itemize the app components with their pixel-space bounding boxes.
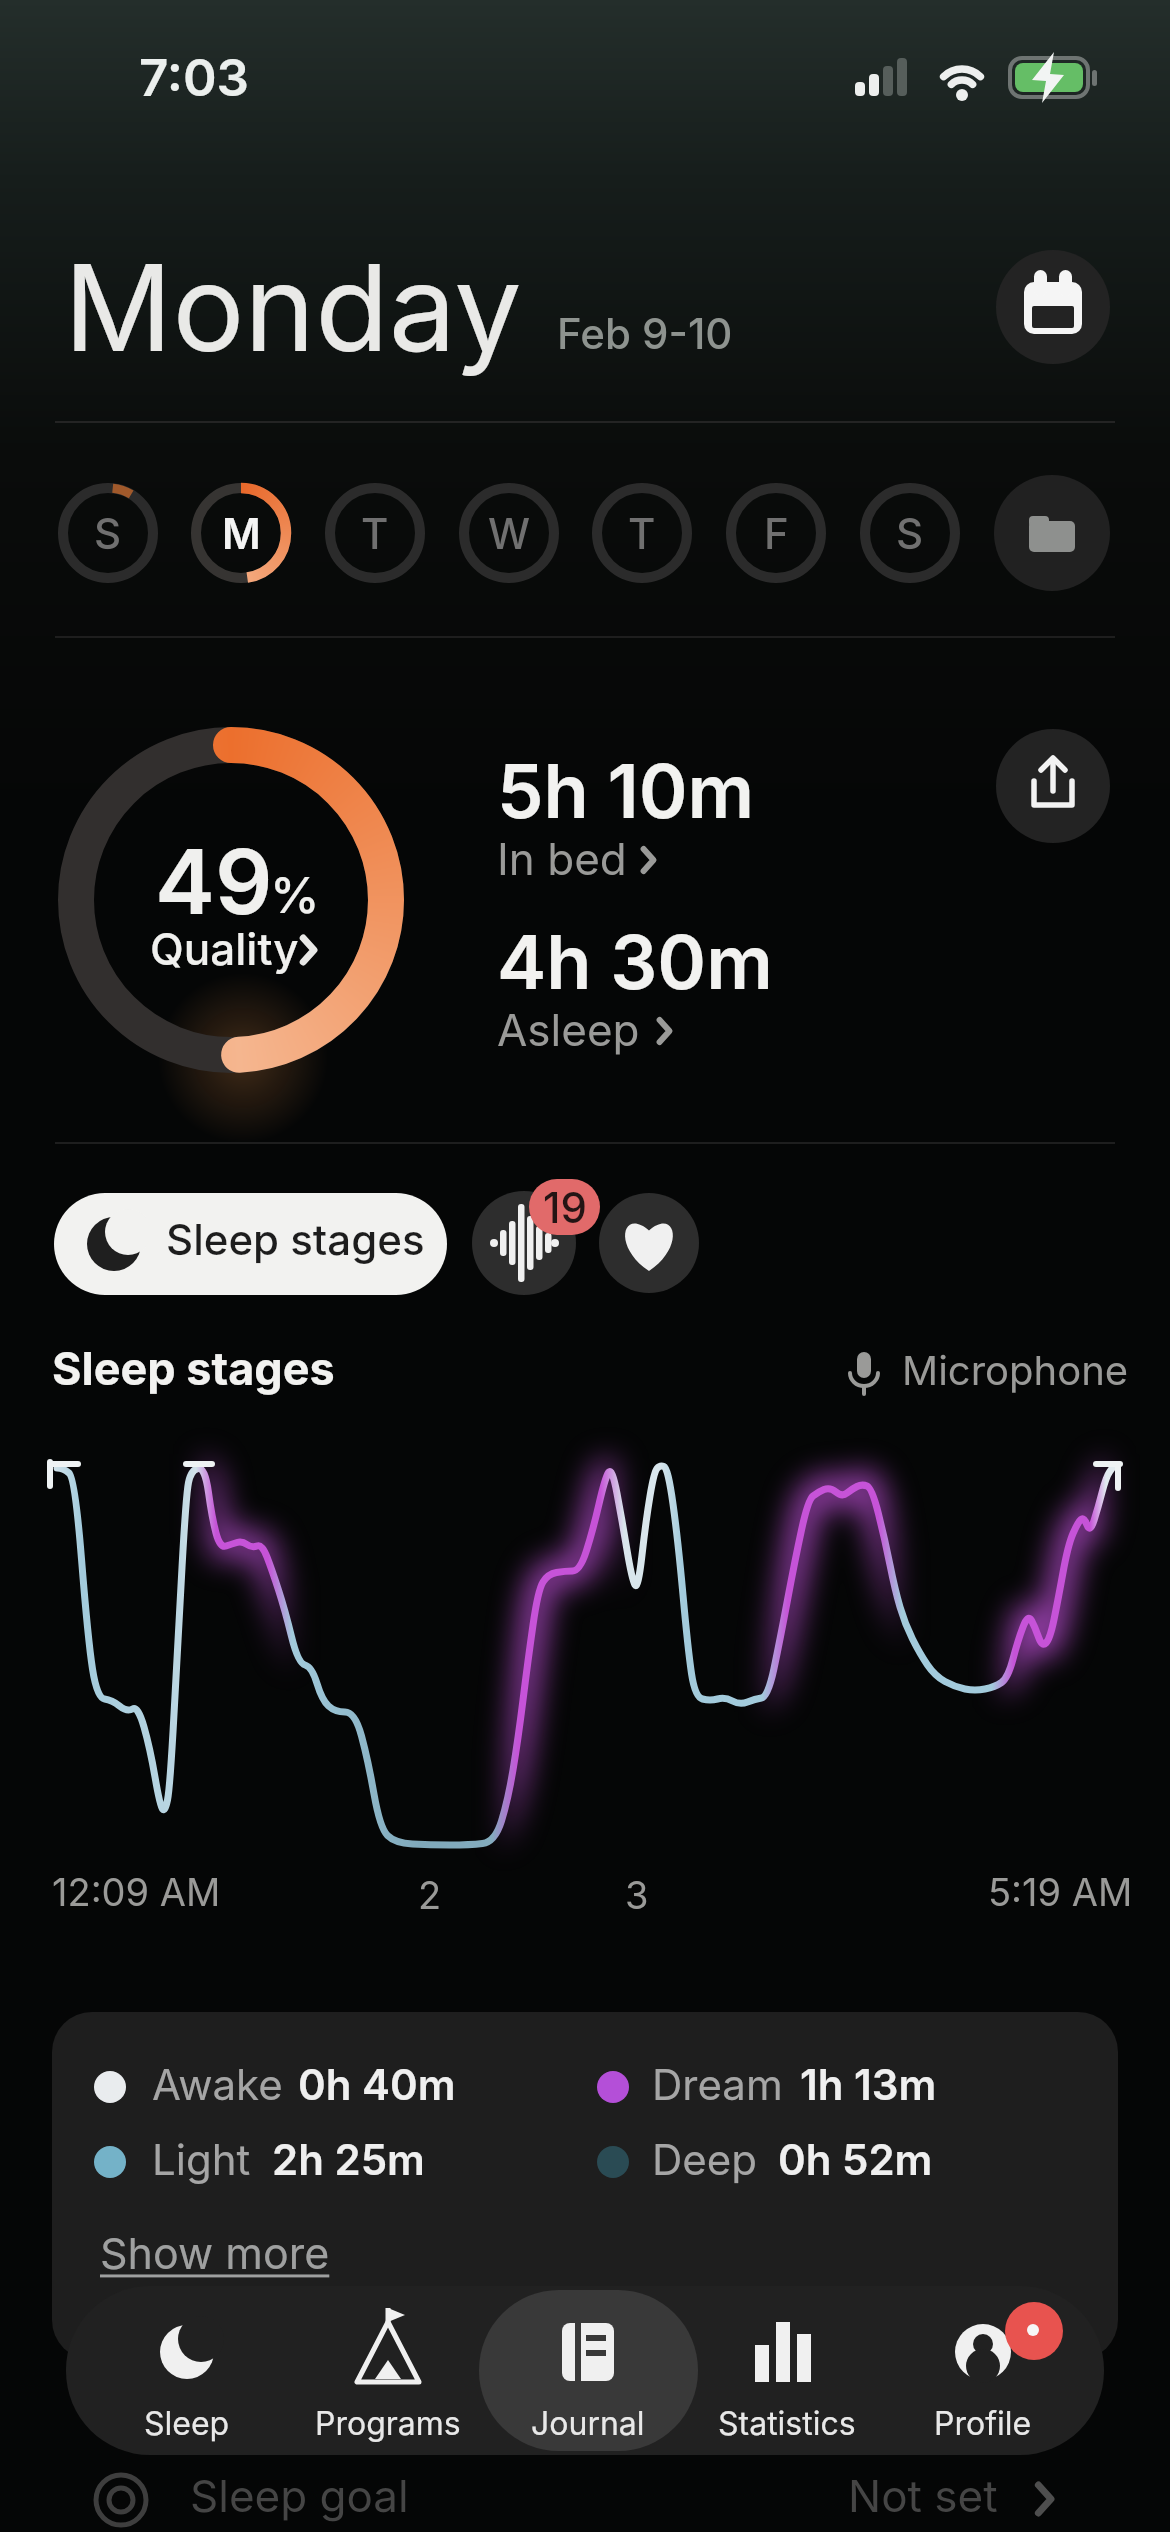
staticText: Sleep goal	[190, 2469, 409, 2522]
staticText: Feb 9-10	[557, 308, 733, 359]
staticText: 0h 52m	[778, 2134, 933, 2185]
button[interactable]	[599, 1193, 699, 1293]
button[interactable]: W	[457, 481, 561, 585]
staticText: 5h 10m	[497, 746, 755, 836]
button[interactable]: Programs	[293, 2290, 483, 2450]
staticText: 4h 30m	[497, 917, 773, 1007]
button[interactable]: Profile	[888, 2290, 1078, 2450]
staticText: In bed	[497, 832, 627, 885]
staticText: 3	[625, 1872, 649, 1918]
staticText: Microphone	[902, 1346, 1129, 1394]
button[interactable]: T	[323, 481, 427, 585]
button[interactable]	[996, 250, 1110, 364]
staticText: 2	[418, 1872, 442, 1918]
staticText: Quality	[150, 922, 299, 975]
button[interactable]: Sleep	[92, 2290, 282, 2450]
staticText: Monday	[64, 235, 522, 380]
staticText: Awake	[152, 2059, 283, 2110]
staticText: %	[270, 865, 320, 925]
staticText: 0h 40m	[298, 2059, 456, 2110]
staticText: Deep	[652, 2134, 757, 2185]
staticText: Statistics	[718, 2404, 856, 2443]
staticText: M	[222, 508, 261, 559]
button[interactable]: Journal	[493, 2290, 683, 2450]
staticText: 2h 25m	[272, 2134, 425, 2185]
staticText: 19	[543, 1182, 587, 1233]
staticText: Profile	[934, 2404, 1032, 2443]
staticText: F	[764, 508, 789, 559]
button[interactable]: Show more	[52, 2012, 282, 2064]
staticText: 5:19 AM	[988, 1869, 1133, 1915]
staticText: 1h 13m	[800, 2059, 937, 2110]
staticText: T	[628, 508, 656, 559]
button[interactable]: F	[724, 481, 828, 585]
staticText: Journal	[531, 2404, 645, 2443]
staticText: Dream	[652, 2059, 783, 2110]
button[interactable]: S	[56, 481, 160, 585]
button[interactable]	[472, 1191, 576, 1295]
button[interactable]: Sleep stages	[54, 1193, 447, 1295]
staticText: Light	[152, 2134, 251, 2185]
button[interactable]: M	[189, 481, 293, 585]
button[interactable]: T	[590, 481, 694, 585]
button[interactable]	[996, 729, 1110, 843]
staticText: Not set	[848, 2469, 998, 2522]
button[interactable]	[994, 475, 1110, 591]
staticText: Sleep	[144, 2404, 230, 2443]
button[interactable]: S	[858, 481, 962, 585]
staticText: Programs	[315, 2404, 461, 2443]
button[interactable]: Statistics	[692, 2290, 882, 2450]
staticText: Sleep stages	[52, 1341, 335, 1395]
staticText: S	[94, 508, 122, 559]
staticText: Sleep stages	[166, 1214, 425, 1265]
staticText: W	[488, 508, 531, 559]
staticText: S	[896, 508, 924, 559]
staticText: 7:03	[139, 47, 250, 109]
staticText: Asleep	[497, 1003, 640, 1056]
staticText: T	[361, 508, 389, 559]
staticText: 12:09 AM	[52, 1869, 221, 1915]
